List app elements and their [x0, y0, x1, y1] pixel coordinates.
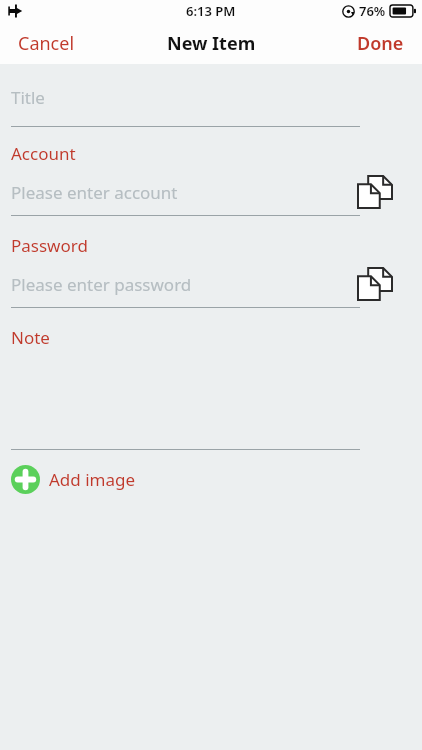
button[interactable]: Please enter account — [0, 170, 340, 215]
staticText: Account — [11, 142, 76, 165]
staticText: Please enter password — [11, 273, 192, 296]
button[interactable]: Copy account — [358, 176, 392, 208]
button[interactable]: Done — [339, 23, 422, 64]
button[interactable]: Cancel — [0, 23, 93, 64]
staticText: Done — [357, 31, 404, 56]
staticText: Add image — [49, 468, 136, 491]
staticText: New Item — [167, 31, 256, 56]
staticText: Cancel — [18, 31, 75, 56]
button[interactable]: Please enter password — [0, 262, 340, 307]
staticText: Password — [11, 234, 88, 257]
staticText: 76% — [359, 2, 386, 20]
staticText: Please enter account — [11, 181, 178, 204]
staticText: Title — [11, 86, 45, 109]
button[interactable]: Copy password — [358, 268, 392, 300]
staticText: 6:13 PM — [186, 2, 236, 20]
button[interactable]: Add image — [8, 462, 139, 497]
button[interactable]: Title — [0, 64, 422, 126]
staticText: Note — [11, 326, 50, 349]
